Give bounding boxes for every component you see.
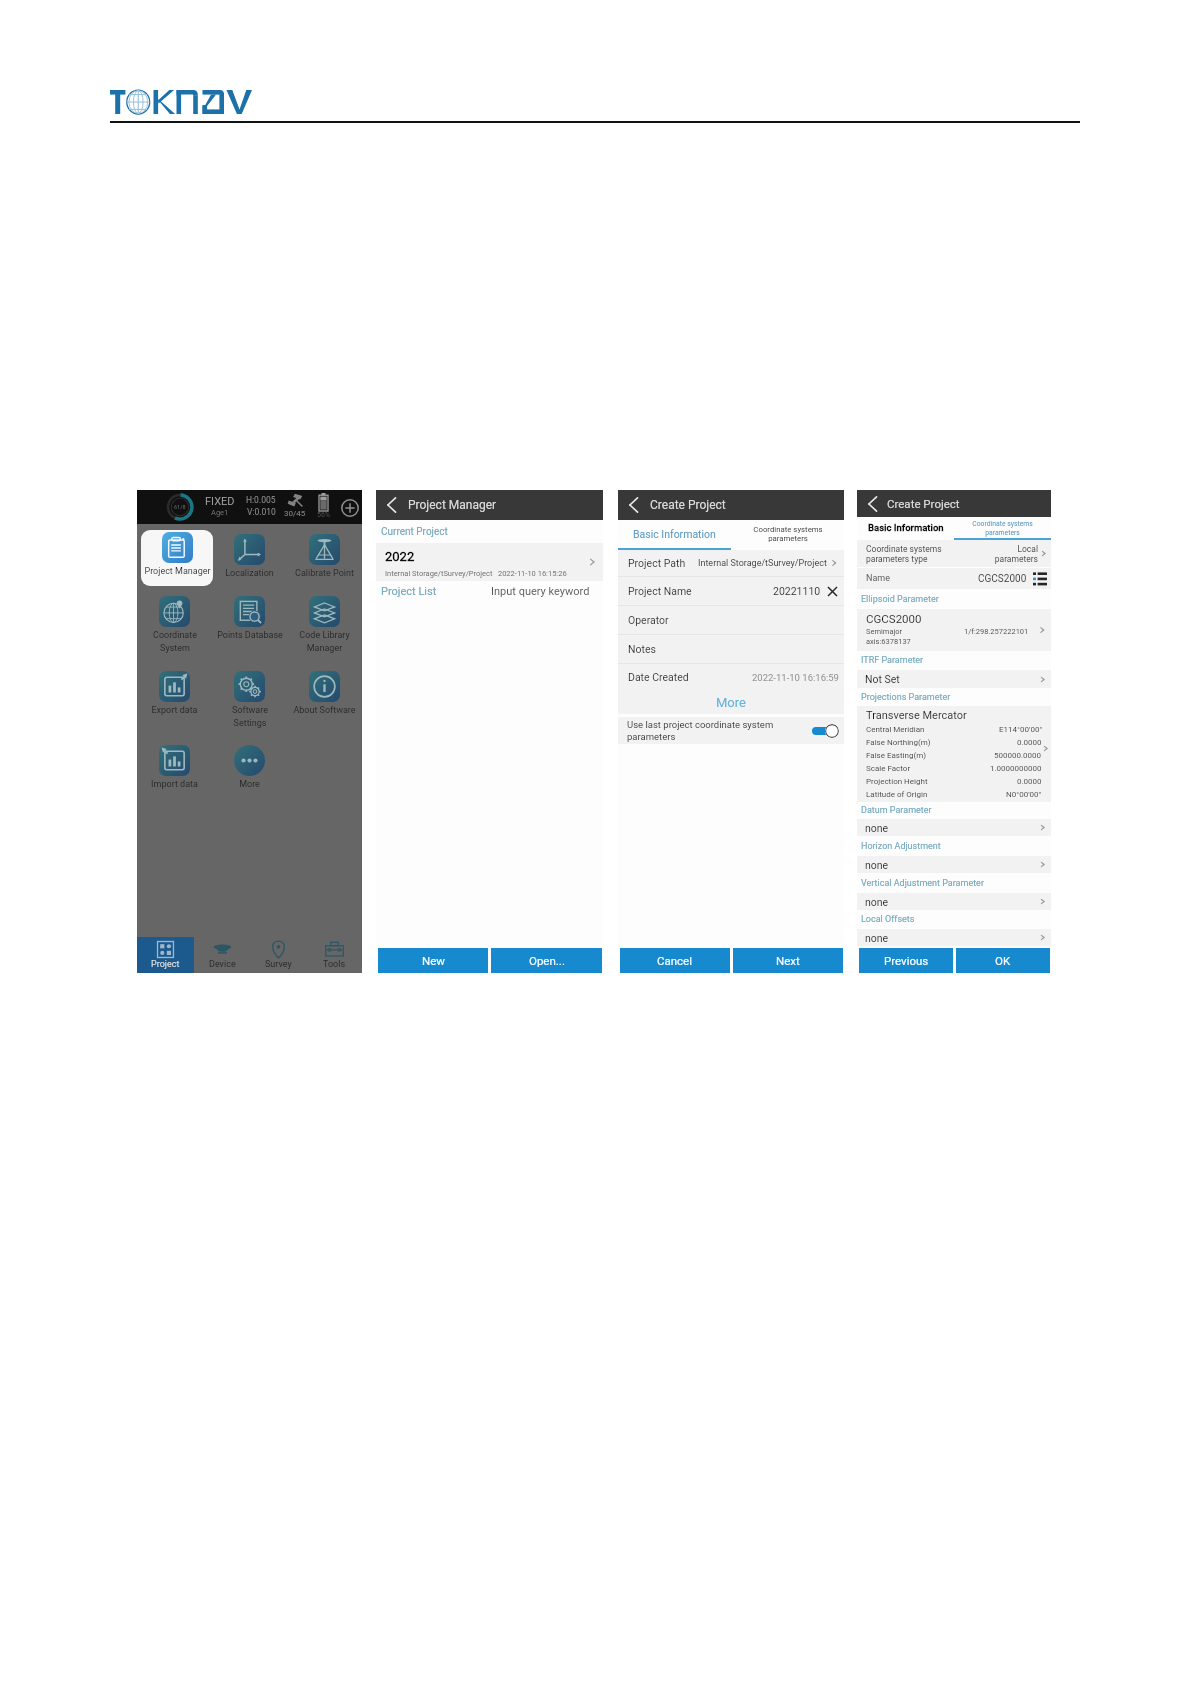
button[interactable]: none — [865, 929, 1047, 946]
button[interactable]: Project Path — [628, 550, 839, 576]
button[interactable]: Project Manager — [141, 530, 213, 586]
staticText: none — [865, 896, 889, 908]
button[interactable]: Back — [622, 490, 644, 520]
staticText: V:0.010 — [247, 507, 276, 517]
staticText: Project Path — [628, 557, 686, 569]
staticText: Age1 — [211, 508, 229, 517]
button[interactable]: none — [865, 893, 1047, 910]
button[interactable]: Calibrate Point — [287, 534, 362, 579]
staticText: Coordinate systems parameters — [972, 520, 1033, 536]
button[interactable]: Export data — [137, 671, 212, 716]
staticText: Next — [776, 954, 800, 967]
staticText: Input query keyword — [491, 585, 590, 598]
staticText: Localization — [225, 568, 274, 579]
button[interactable]: About Software — [287, 671, 362, 716]
staticText: Horizon Adjustment — [861, 841, 941, 852]
staticText: Create Project — [887, 497, 960, 510]
staticText: 2022 — [385, 549, 415, 564]
button[interactable]: Basic Information — [857, 517, 954, 538]
staticText: Datum Parameter — [861, 805, 932, 816]
button[interactable]: Not Set — [865, 670, 1047, 688]
button[interactable]: New — [378, 948, 488, 973]
staticText: N0°00'00" — [1006, 790, 1042, 799]
staticText: Import data — [151, 779, 198, 790]
button[interactable]: Transverse Mercator — [857, 706, 1051, 802]
staticText: More — [716, 695, 746, 710]
staticText: 30/45 — [284, 509, 306, 518]
button[interactable]: Notes — [628, 635, 839, 663]
staticText: Software Settings — [232, 705, 268, 728]
button[interactable]: 2022 — [376, 543, 603, 581]
button[interactable]: Coordinate systems parameters — [954, 517, 1051, 538]
staticText: Tools — [323, 959, 346, 970]
button[interactable]: Open... — [491, 948, 602, 973]
staticText: 1/f:298.257222101 — [964, 627, 1029, 636]
staticText: Project Manager — [144, 566, 211, 577]
staticText: none — [865, 822, 889, 834]
button[interactable]: Operator — [628, 606, 839, 634]
button[interactable]: Software Settings — [212, 671, 287, 728]
button[interactable]: Date Created — [628, 664, 839, 690]
button[interactable]: Use last project coordinate system param… — [812, 724, 839, 738]
staticText: Project — [151, 959, 180, 970]
staticText: Basic Information — [633, 528, 716, 540]
button[interactable]: Project — [137, 937, 194, 973]
button[interactable]: Basic Information — [618, 520, 731, 548]
staticText: Date Created — [628, 671, 689, 683]
button[interactable]: OK — [956, 948, 1050, 973]
button[interactable]: Device — [194, 937, 250, 973]
button[interactable]: Previous — [859, 948, 953, 973]
staticText: OK — [995, 954, 1011, 967]
button[interactable]: Back — [380, 490, 402, 520]
staticText: Ellipsoid Parameter — [861, 594, 939, 605]
button[interactable]: Coordinate systems parameters — [731, 520, 844, 548]
staticText: About Software — [293, 705, 356, 716]
button[interactable]: Clear project name — [825, 584, 839, 598]
button[interactable]: Add project — [340, 498, 359, 517]
button[interactable]: Cancel — [620, 948, 730, 973]
button[interactable]: More — [618, 690, 844, 714]
staticText: Open... — [529, 954, 565, 967]
staticText: Vertical Adjustment Parameter — [861, 878, 984, 889]
staticText: 0.0000 — [1017, 777, 1042, 786]
staticText: Operator — [628, 614, 669, 626]
button[interactable]: Project Manager — [137, 534, 212, 579]
button[interactable]: Use last project coordinate system param… — [627, 717, 839, 744]
button[interactable]: none — [865, 856, 1047, 873]
button[interactable]: Back — [861, 490, 883, 517]
staticText: Calibrate Point — [295, 568, 354, 579]
staticText: Central Meridian — [866, 725, 925, 734]
staticText: Current Project — [381, 526, 448, 538]
staticText: Latitude of Origin — [866, 790, 928, 799]
button[interactable]: CGCS2000 — [857, 609, 1051, 651]
button[interactable]: More — [212, 745, 287, 790]
button[interactable]: Localization — [212, 534, 287, 579]
button[interactable]: Survey — [250, 937, 306, 973]
button[interactable]: Coordinate System — [137, 596, 212, 653]
button[interactable]: none — [865, 819, 1047, 836]
button[interactable]: Project Name — [628, 577, 839, 605]
button[interactable]: Coordinate systems parameters type — [866, 540, 1048, 567]
staticText: FIXED — [205, 495, 235, 508]
button[interactable]: Tools — [306, 937, 362, 973]
button[interactable]: Pick coordinate system from list — [1033, 570, 1047, 587]
staticText: Device — [209, 959, 236, 970]
button[interactable]: Import data — [137, 745, 212, 790]
staticText: Coordinate systems parameters type — [866, 544, 942, 564]
staticText: Project Name — [628, 585, 692, 597]
button[interactable]: Next — [733, 948, 843, 973]
staticText: 500000.0000 — [994, 751, 1042, 760]
staticText: Cancel — [657, 954, 693, 967]
staticText: Create Project — [650, 498, 726, 512]
button[interactable]: Points Database — [212, 596, 287, 641]
staticText: Export data — [151, 705, 198, 716]
staticText: Semimajor axis:6378137 — [866, 627, 911, 646]
staticText: Code Library Manager — [299, 630, 350, 653]
staticText: 20221110 — [773, 585, 821, 597]
button[interactable]: Code Library Manager — [287, 596, 362, 653]
staticText: Local Offsets — [861, 914, 915, 925]
staticText: Not Set — [865, 673, 900, 685]
staticText: More — [239, 779, 260, 790]
button[interactable]: Name — [866, 568, 1047, 589]
staticText: Project List — [381, 585, 437, 598]
